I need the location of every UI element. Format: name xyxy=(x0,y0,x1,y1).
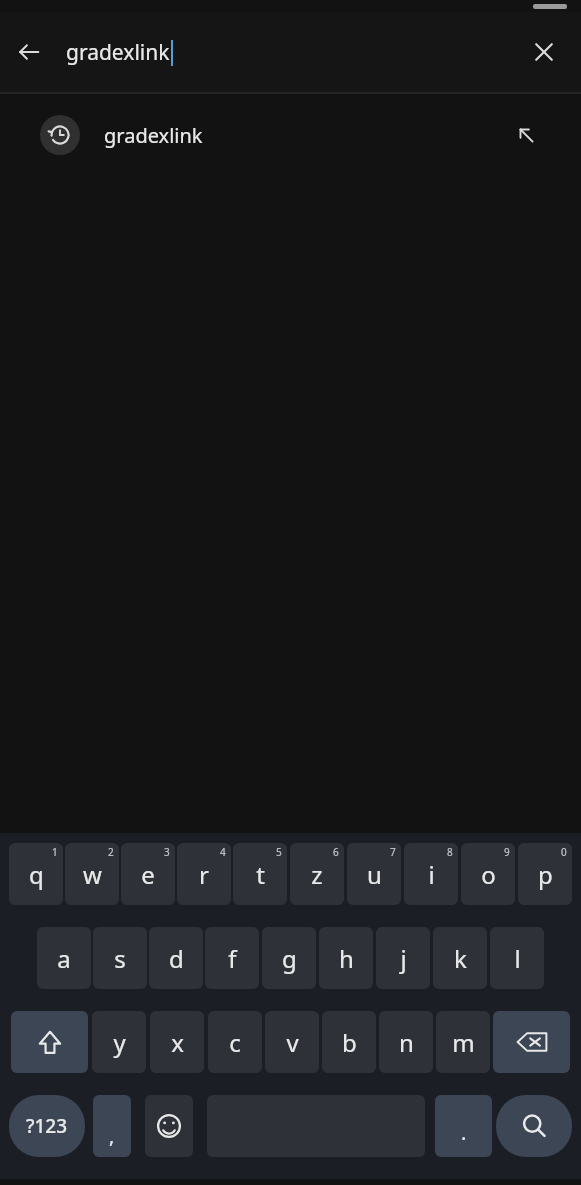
staticText: 3 xyxy=(164,845,170,859)
button[interactable]: Back xyxy=(0,23,58,81)
button[interactable]: b xyxy=(322,1011,376,1073)
staticText: 5 xyxy=(276,845,282,859)
staticText: gradexlink xyxy=(104,122,501,149)
staticText: ?123 xyxy=(26,1113,68,1139)
button[interactable]: x xyxy=(150,1011,204,1073)
staticText: 1 xyxy=(52,845,58,859)
button[interactable]: m xyxy=(436,1011,490,1073)
staticText: y xyxy=(113,1026,126,1059)
staticText: i xyxy=(428,858,435,891)
staticText: h xyxy=(339,942,354,975)
button[interactable]: , xyxy=(93,1095,131,1157)
button[interactable]: h xyxy=(319,927,373,989)
staticText: c xyxy=(229,1026,241,1059)
staticText: , xyxy=(109,1122,115,1149)
staticText: w xyxy=(83,858,102,891)
staticText: d xyxy=(169,942,184,975)
button[interactable]: t xyxy=(233,843,287,905)
staticText: a xyxy=(57,942,71,975)
button[interactable]: q xyxy=(9,843,63,905)
button[interactable]: v xyxy=(265,1011,319,1073)
staticText: o xyxy=(481,858,496,891)
staticText: f xyxy=(228,942,237,975)
button[interactable]: gradexlink xyxy=(0,94,581,176)
button[interactable]: . xyxy=(435,1095,492,1157)
staticText: n xyxy=(399,1026,414,1059)
button[interactable]: n xyxy=(379,1011,433,1073)
button[interactable]: k xyxy=(433,927,487,989)
staticText: b xyxy=(342,1026,357,1059)
staticText: g xyxy=(282,942,297,975)
button[interactable]: o xyxy=(461,843,515,905)
button[interactable]: Use this suggestion xyxy=(501,110,551,160)
staticText: 8 xyxy=(447,845,453,859)
button[interactable]: j xyxy=(376,927,430,989)
button[interactable]: Emoji xyxy=(145,1095,193,1157)
staticText: x xyxy=(171,1026,184,1059)
staticText: t xyxy=(256,858,265,891)
button[interactable]: i xyxy=(404,843,458,905)
button[interactable]: Clear search xyxy=(513,21,575,83)
staticText: j xyxy=(400,942,407,975)
button[interactable]: y xyxy=(92,1011,146,1073)
button[interactable]: z xyxy=(290,843,344,905)
button[interactable]: c xyxy=(208,1011,262,1073)
button[interactable]: w xyxy=(65,843,119,905)
button[interactable]: p xyxy=(518,843,572,905)
staticText: 0 xyxy=(561,845,567,859)
button[interactable]: s xyxy=(93,927,147,989)
staticText: e xyxy=(141,858,155,891)
staticText: 4 xyxy=(220,845,226,859)
staticText: 2 xyxy=(108,845,114,859)
button[interactable]: r xyxy=(177,843,231,905)
button[interactable]: l xyxy=(490,927,544,989)
staticText: r xyxy=(199,858,209,891)
button[interactable]: ?123 xyxy=(9,1095,85,1157)
button[interactable]: u xyxy=(347,843,401,905)
button[interactable]: Shift xyxy=(11,1011,88,1073)
staticText: 6 xyxy=(333,845,339,859)
staticText: l xyxy=(514,942,521,975)
staticText: 9 xyxy=(504,845,510,859)
staticText: k xyxy=(454,942,467,975)
button[interactable]: Backspace xyxy=(493,1011,570,1073)
staticText: q xyxy=(29,858,44,891)
button[interactable]: Search xyxy=(496,1095,572,1157)
staticText: 7 xyxy=(390,845,396,859)
staticText: p xyxy=(538,858,553,891)
button[interactable]: d xyxy=(149,927,203,989)
staticText: s xyxy=(114,942,126,975)
staticText: u xyxy=(367,858,382,891)
staticText: v xyxy=(286,1026,299,1059)
staticText: m xyxy=(452,1026,475,1059)
button[interactable]: f xyxy=(205,927,259,989)
staticText: gradexlink xyxy=(66,38,170,67)
button[interactable]: e xyxy=(121,843,175,905)
staticText: z xyxy=(311,858,323,891)
staticText: . xyxy=(461,1119,467,1146)
button[interactable]: g xyxy=(262,927,316,989)
button[interactable]: a xyxy=(37,927,91,989)
